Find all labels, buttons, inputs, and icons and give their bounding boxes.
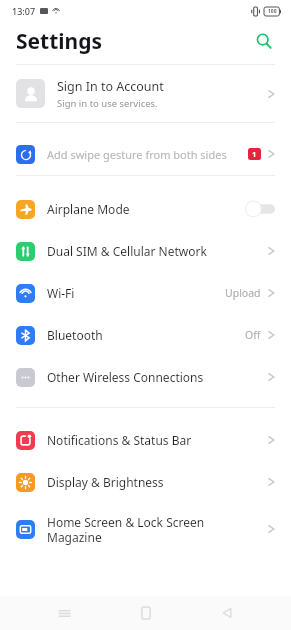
button[interactable]: Back bbox=[210, 596, 244, 630]
button[interactable]: Notifications & Status Bar bbox=[0, 419, 291, 461]
button[interactable]: Recents bbox=[47, 596, 81, 630]
button[interactable]: Sign In to Account bbox=[0, 65, 291, 122]
staticText: Notifications & Status Bar bbox=[47, 432, 268, 448]
button[interactable]: Dual SIM & Cellular Network bbox=[0, 230, 291, 272]
button[interactable]: Other Wireless Connections bbox=[0, 356, 291, 398]
staticText: Other Wireless Connections bbox=[47, 369, 268, 385]
button[interactable]: Home Screen & Lock Screen Magazine bbox=[0, 503, 291, 555]
staticText: Home Screen & Lock Screen Magazine bbox=[47, 514, 268, 545]
staticText: Settings bbox=[16, 27, 103, 56]
button[interactable]: Bluetooth bbox=[0, 314, 291, 356]
staticText: 1 bbox=[252, 149, 257, 159]
staticText: Dual SIM & Cellular Network bbox=[47, 243, 268, 259]
button[interactable]: Add swipe gesture from both sides bbox=[0, 133, 291, 175]
staticText: Airplane Mode bbox=[47, 201, 245, 217]
staticText: Sign In to Account bbox=[57, 78, 164, 95]
staticText: Upload bbox=[225, 286, 261, 300]
button[interactable]: Home bbox=[129, 596, 163, 630]
button[interactable]: Airplane Mode bbox=[0, 188, 291, 230]
button[interactable]: Display & Brightness bbox=[0, 461, 291, 503]
button[interactable]: Search bbox=[249, 26, 279, 56]
staticText: 100 bbox=[268, 8, 277, 15]
staticText: Bluetooth bbox=[47, 327, 245, 343]
staticText: Sign in to use services. bbox=[57, 97, 158, 110]
staticText: Wi-Fi bbox=[47, 285, 225, 301]
staticText: Off bbox=[245, 328, 261, 342]
staticText: Add swipe gesture from both sides bbox=[47, 147, 248, 162]
staticText: Display & Brightness bbox=[47, 474, 268, 490]
staticText: 13:07 bbox=[12, 5, 36, 17]
button[interactable]: Wi-Fi bbox=[0, 272, 291, 314]
